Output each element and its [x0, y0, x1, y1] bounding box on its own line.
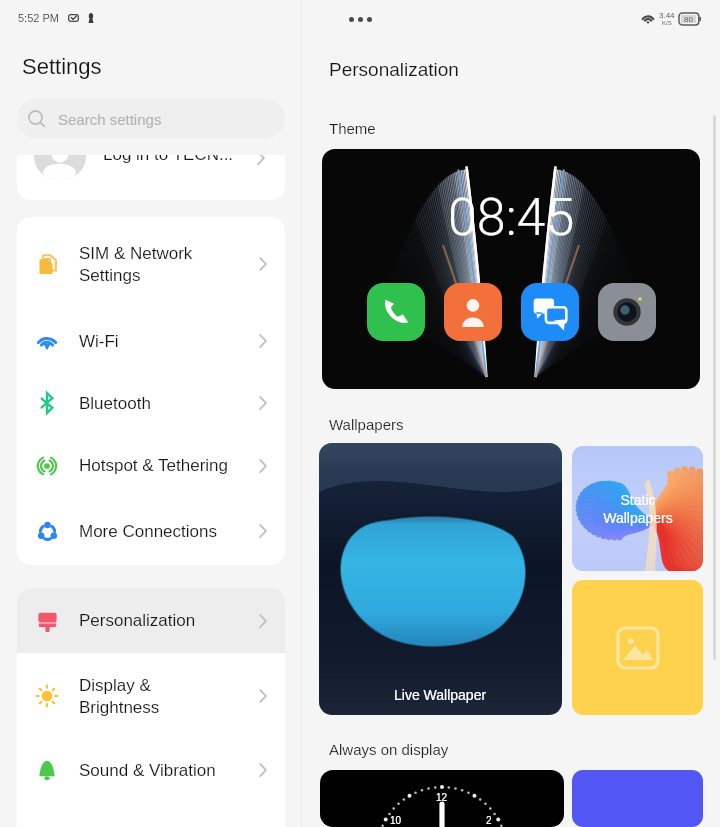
other: Open [259, 689, 267, 703]
staticText: 3.44 [659, 11, 675, 20]
staticText: Personalization [79, 611, 259, 630]
other: Open [259, 396, 267, 410]
other: Open [259, 614, 267, 628]
staticText: Display & Brightness [79, 676, 259, 716]
staticText: K/S [662, 20, 672, 27]
staticText: SIM & Network Settings [79, 244, 259, 284]
button[interactable]: Wi-Fi [17, 310, 285, 372]
staticText: 10 [390, 815, 402, 826]
button[interactable]: Sound & Vibration [17, 739, 285, 801]
staticText: Settings [22, 54, 102, 79]
staticText: 2 [486, 815, 492, 826]
other: Open [259, 763, 267, 777]
button[interactable]: Live Wallpaper [319, 443, 562, 715]
other: Open [259, 524, 267, 538]
button[interactable]: Bluetooth [17, 372, 285, 434]
button[interactable]: Hotspot & Tethering [17, 434, 285, 497]
button[interactable] [572, 580, 703, 715]
button[interactable]: Static Wallpapers [572, 446, 703, 571]
button[interactable]: SIM & Network Settings [17, 217, 285, 310]
button[interactable]: Log in to TECN... [17, 155, 285, 200]
staticText: 12 [436, 792, 448, 803]
other: Open [259, 459, 267, 473]
staticText: 5:52 PM [18, 12, 59, 24]
staticText: Static Wallpapers [603, 492, 673, 526]
button[interactable]: More Connections [17, 497, 285, 565]
staticText: 80 [684, 15, 693, 23]
staticText: Live Wallpaper [394, 687, 487, 703]
other: Open [259, 334, 267, 348]
button[interactable]: 12 [320, 770, 564, 827]
button[interactable] [572, 770, 703, 827]
staticText: Wi-Fi [79, 332, 259, 351]
staticText: Bluetooth [79, 394, 259, 413]
staticText: Search settings [58, 111, 162, 128]
button[interactable]: More options [349, 17, 372, 22]
staticText: More Connections [79, 522, 259, 541]
button[interactable]: Display & Brightness [17, 653, 285, 739]
staticText: Hotspot & Tethering [79, 456, 259, 475]
button[interactable]: Search settings [17, 99, 285, 139]
staticText: 08:45 [448, 187, 575, 248]
staticText: Always on display [329, 741, 449, 758]
button[interactable]: Personalization [17, 588, 285, 653]
staticText: Log in to TECN... [103, 155, 234, 164]
staticText: Wallpapers [329, 416, 404, 433]
staticText: Sound & Vibration [79, 761, 259, 780]
other: Open [257, 155, 265, 165]
other: Open [259, 257, 267, 271]
staticText: Personalization [329, 59, 459, 80]
staticText: Theme [329, 120, 376, 137]
button[interactable]: 08:45 [322, 149, 700, 389]
